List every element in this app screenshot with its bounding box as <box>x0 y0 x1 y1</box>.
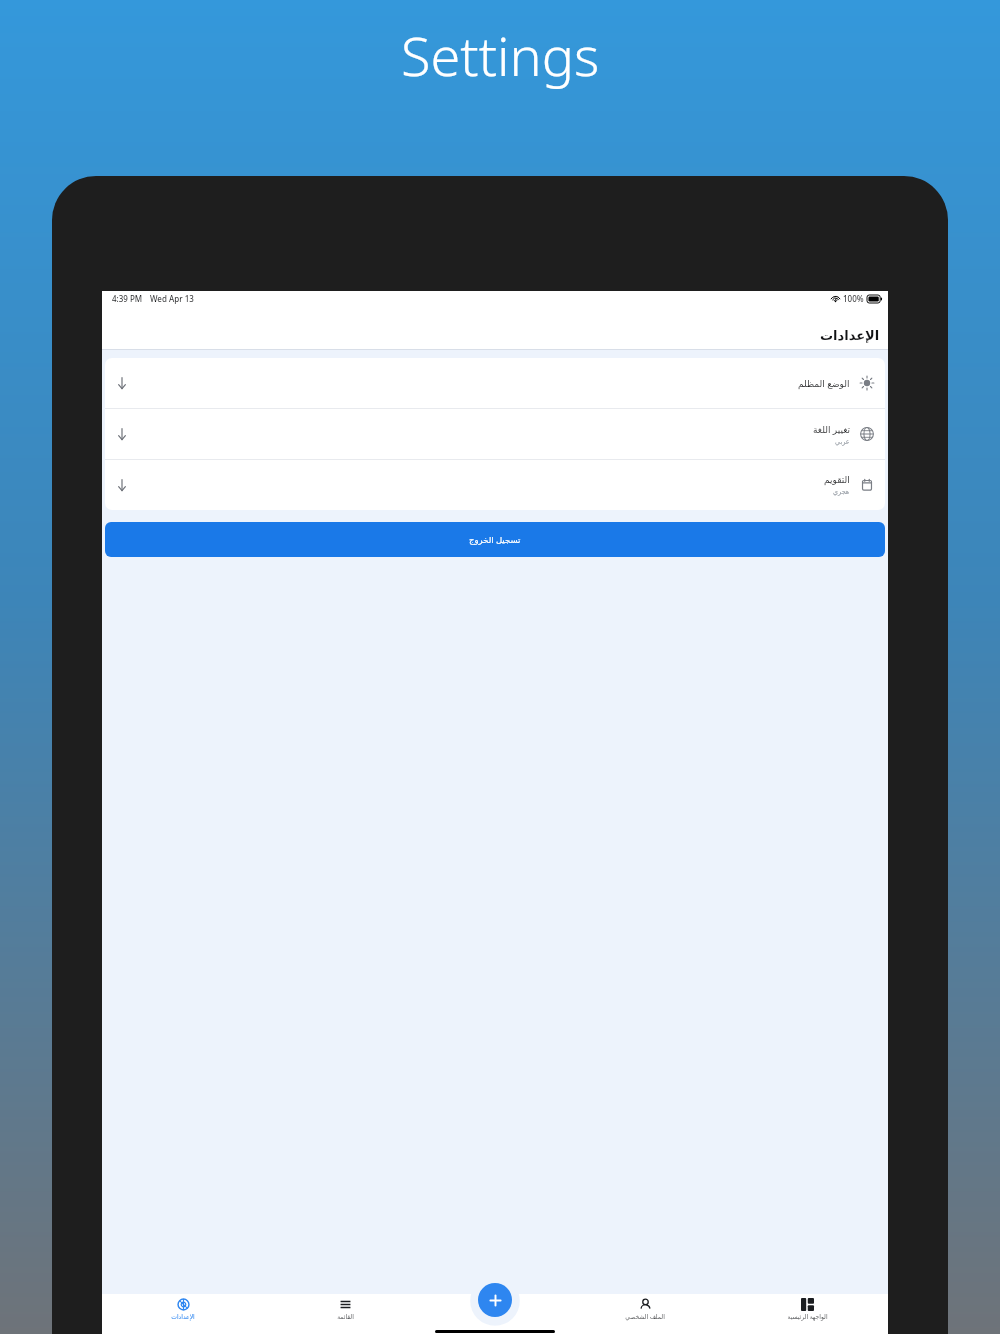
other: التقويم <box>859 477 875 493</box>
button[interactable]: Expand <box>105 409 885 459</box>
staticText: عربي <box>835 438 850 446</box>
staticText: الإعدادات <box>171 1313 195 1320</box>
staticText: الوضع المظلم <box>798 377 850 389</box>
button[interactable]: تسجيل الخروج <box>105 522 885 557</box>
button[interactable]: Expand <box>105 358 885 408</box>
staticText: الملف الشخصي <box>625 1313 665 1321</box>
button[interactable]: الملف الشخصي <box>564 1294 726 1334</box>
staticText: تسجيل الخروج <box>469 534 521 546</box>
other: الواجهة الرئيسية <box>801 1298 814 1311</box>
button[interactable]: Expand <box>105 460 885 510</box>
other: Expand <box>115 376 129 390</box>
other: الإعدادات <box>177 1298 190 1311</box>
staticText: الواجهة الرئيسية <box>787 1313 828 1321</box>
button[interactable]: Add <box>478 1283 512 1317</box>
button[interactable]: الواجهة الرئيسية <box>726 1294 888 1334</box>
staticText: 4:39 PM <box>112 293 143 304</box>
staticText: 100% <box>843 293 864 304</box>
other: القائمة <box>339 1298 352 1311</box>
other: الوضع المظلم <box>859 375 875 391</box>
staticText: الإعدادات <box>820 328 880 343</box>
button[interactable]: القائمة <box>264 1294 426 1334</box>
other: Expand <box>115 427 129 441</box>
other: Expand <box>115 478 129 492</box>
staticText: Wed Apr 13 <box>150 293 194 304</box>
staticText: تغيير اللغة <box>813 423 850 435</box>
button[interactable]: الإعدادات <box>102 1294 264 1334</box>
staticText: القائمة <box>337 1313 354 1320</box>
other: الملف الشخصي <box>639 1298 652 1311</box>
staticText: التقويم <box>824 475 850 485</box>
staticText: Settings <box>401 18 600 92</box>
staticText: هجري <box>833 488 850 496</box>
other: تغيير اللغة <box>859 426 875 442</box>
